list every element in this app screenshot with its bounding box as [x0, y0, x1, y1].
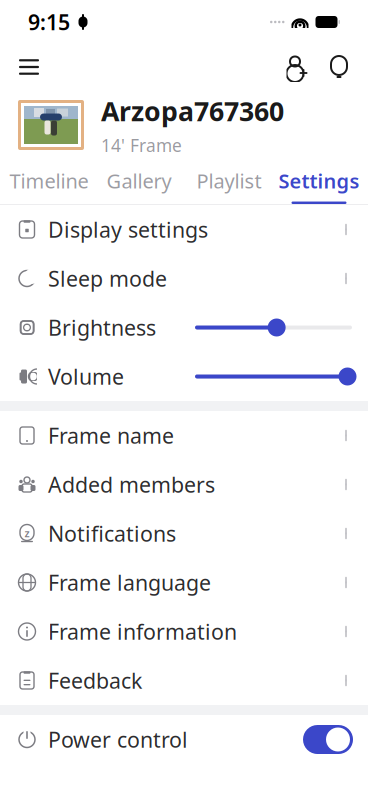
staticText: Playlist	[196, 167, 261, 194]
staticText: Volume	[48, 362, 124, 391]
button[interactable]: Playlist	[184, 160, 274, 204]
staticText: 14' Frame	[101, 134, 182, 157]
staticText: 9:15	[28, 8, 70, 36]
staticText: Brightness	[48, 313, 156, 342]
staticText: Frame name	[48, 421, 174, 450]
staticText: Added members	[48, 470, 215, 499]
staticText: z	[24, 526, 29, 540]
button[interactable]: Timeline	[4, 160, 94, 204]
staticText: Arzopa767360	[101, 93, 284, 129]
staticText: Notifications	[48, 519, 176, 548]
staticText: Gallery	[106, 167, 171, 194]
button[interactable]: Menu	[7, 45, 51, 89]
staticText: Settings	[278, 167, 359, 194]
button[interactable]: Gallery	[94, 160, 184, 204]
button[interactable]: Frame information	[0, 607, 368, 656]
button[interactable]: Add member	[273, 45, 317, 89]
button[interactable]: Sleep mode	[0, 254, 368, 303]
staticText: Display settings	[48, 215, 208, 244]
button[interactable]: Frame language	[0, 558, 368, 607]
button[interactable]: Display settings	[0, 205, 368, 254]
button[interactable]: Feedback	[0, 656, 368, 705]
staticText: Timeline	[9, 167, 88, 194]
staticText: Power control	[48, 725, 188, 754]
button[interactable]: Power control	[303, 725, 353, 754]
button[interactable]: Settings	[274, 160, 364, 204]
button[interactable]: Frame name	[0, 411, 368, 460]
button[interactable]: Added members	[0, 460, 368, 509]
staticText: Sleep mode	[48, 264, 167, 293]
button[interactable]: z	[0, 509, 368, 558]
staticText: Frame information	[48, 617, 237, 646]
button[interactable]: Notifications	[317, 45, 361, 89]
staticText: Feedback	[48, 666, 142, 695]
staticText: Frame language	[48, 568, 211, 597]
